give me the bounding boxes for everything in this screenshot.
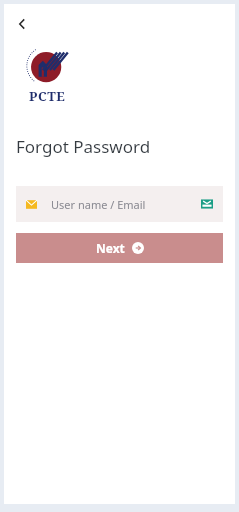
staticText: PCTE [29,87,66,105]
staticText: Next [96,240,125,256]
button[interactable]: Back [8,10,36,38]
button[interactable]: User name / Email [16,186,223,222]
staticText: User name / Email [51,197,201,212]
button[interactable]: Next [16,233,223,263]
staticText: Forgot Password [16,135,151,158]
